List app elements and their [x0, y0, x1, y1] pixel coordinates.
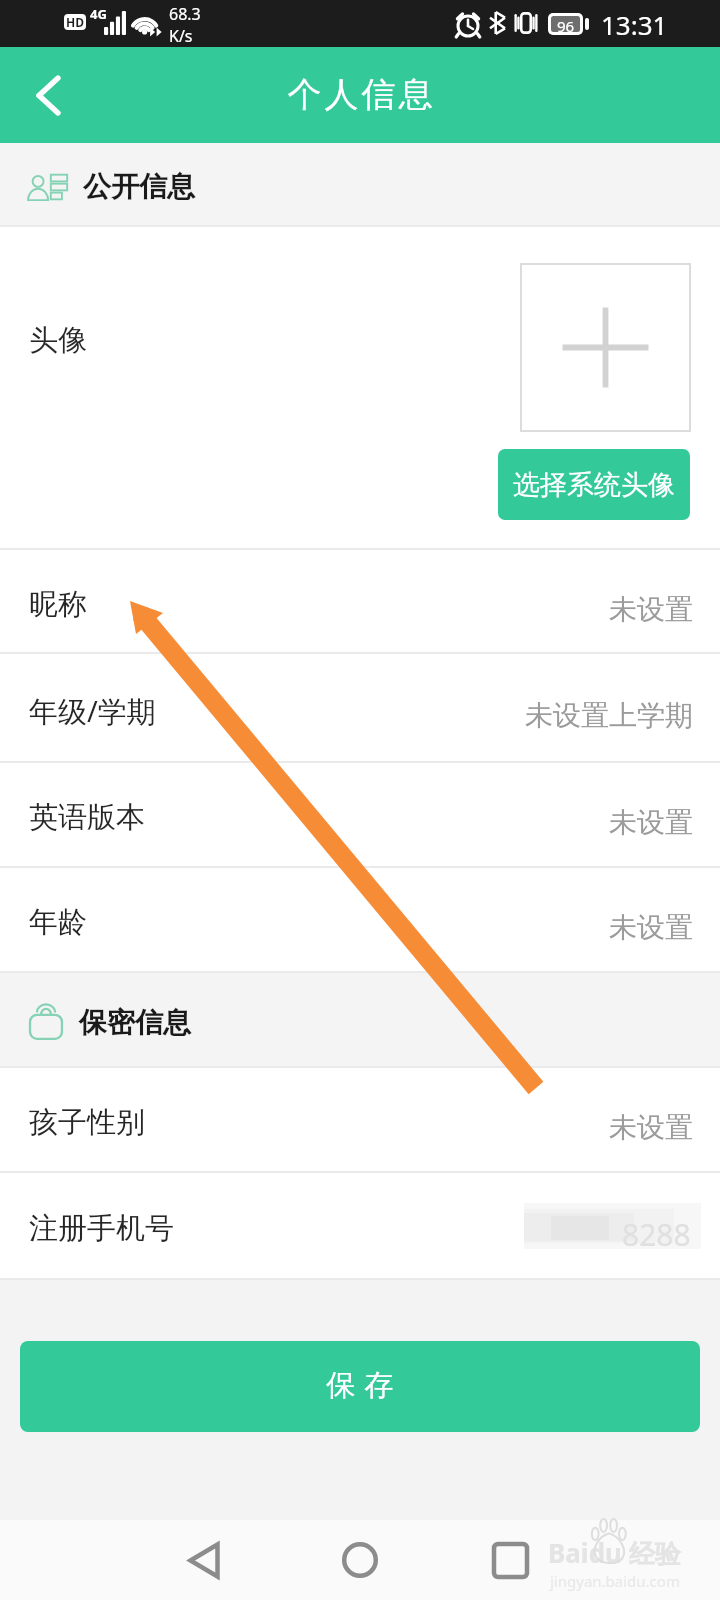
staticText: 未设置上学期 — [525, 698, 693, 733]
staticText: 68.3 — [169, 3, 201, 25]
staticText: 英语版本 — [29, 799, 145, 836]
staticText: 未设置 — [609, 910, 693, 945]
staticText: 未设置 — [609, 805, 693, 840]
button[interactable]: 英语版本 — [0, 763, 720, 866]
button[interactable]: 年级/学期 — [0, 654, 720, 761]
staticText: HD — [66, 14, 84, 30]
button[interactable]: Add avatar — [521, 264, 690, 431]
button[interactable]: 注册手机号 — [0, 1173, 720, 1278]
staticText: 头像 — [29, 322, 87, 359]
staticText: 保密信息 — [79, 1005, 191, 1040]
staticText: 孩子性别 — [29, 1104, 145, 1141]
staticText: 保 存 — [326, 1364, 395, 1404]
staticText: 96 — [557, 16, 575, 32]
staticText: 公开信息 — [83, 169, 195, 204]
staticText: K/s — [169, 25, 193, 47]
button[interactable]: Home — [315, 1520, 405, 1600]
button[interactable]: Back — [159, 1520, 249, 1600]
staticText: 8288 — [622, 1214, 691, 1255]
staticText: 未设置 — [609, 1110, 693, 1145]
staticText: 未设置 — [609, 592, 693, 627]
staticText: Baidu 经验 — [548, 1535, 681, 1571]
staticText: 注册手机号 — [29, 1210, 174, 1247]
button[interactable]: 昵称 — [0, 550, 720, 652]
staticText: 昵称 — [29, 586, 87, 623]
staticText: jingyan.baidu.com — [550, 1571, 680, 1591]
button[interactable]: Back — [0, 47, 96, 143]
staticText: 个人信息 — [286, 73, 434, 116]
staticText: 选择系统头像 — [513, 468, 675, 502]
staticText: 13:31 — [601, 7, 668, 42]
button[interactable]: 年龄 — [0, 868, 720, 971]
button[interactable]: 选择系统头像 — [498, 449, 690, 520]
button[interactable]: 保 存 — [20, 1341, 700, 1432]
button[interactable]: 孩子性别 — [0, 1068, 720, 1171]
staticText: 4G — [90, 5, 107, 23]
button[interactable]: Recents — [465, 1520, 555, 1600]
staticText: 年龄 — [29, 904, 87, 941]
staticText: 年级/学期 — [29, 691, 156, 731]
